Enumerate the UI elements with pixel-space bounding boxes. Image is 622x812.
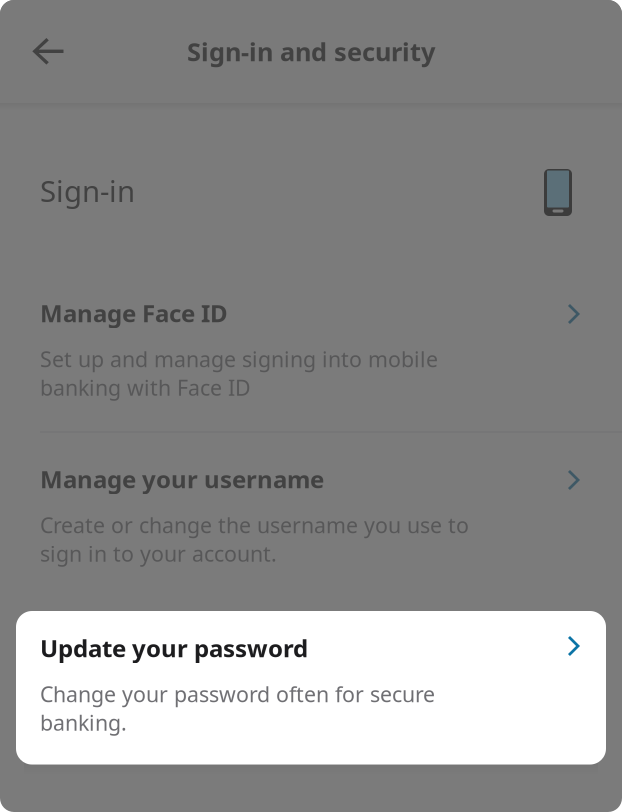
button[interactable]: Update your password	[16, 611, 606, 764]
staticText: Set up and manage signing into mobile ba…	[40, 345, 438, 402]
staticText: Update your password	[40, 632, 308, 664]
staticText: Create or change the username you use to…	[40, 511, 469, 568]
staticText: Manage your username	[40, 463, 324, 495]
button[interactable]: Manage your username	[0, 463, 622, 593]
button[interactable]: Back	[0, 25, 86, 78]
staticText: Sign-in and security	[187, 35, 435, 68]
button[interactable]: Manage Face ID	[0, 297, 622, 431]
staticText: Change your password often for secure ba…	[40, 680, 435, 737]
staticText: Manage Face ID	[40, 297, 228, 329]
staticText: Sign-in	[40, 171, 135, 210]
